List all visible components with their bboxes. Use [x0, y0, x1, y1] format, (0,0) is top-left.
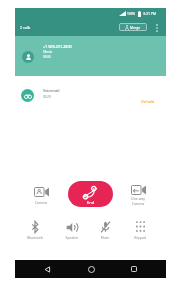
staticText: Merge [130, 25, 141, 29]
button[interactable]: Bluetooth [18, 221, 52, 245]
button[interactable]: Home [79, 260, 103, 278]
staticText: Bluetooth [18, 235, 52, 240]
button[interactable]: Camera [24, 187, 58, 210]
staticText: 3:21 PM [143, 11, 157, 16]
staticText: Voicemail [43, 88, 60, 93]
button[interactable]: More options [150, 19, 164, 36]
staticText: 100% [127, 12, 136, 16]
button[interactable]: Speaker [55, 222, 89, 245]
staticText: Keypad [123, 235, 157, 240]
staticText: Speaker [55, 235, 89, 240]
button[interactable]: +1 509-231-2830 [15, 36, 166, 76]
staticText: +1 509-231-2830 [43, 44, 72, 49]
button[interactable]: Recents [122, 260, 146, 278]
staticText: One-way Camera [121, 196, 155, 206]
button[interactable]: Merge [119, 23, 147, 31]
button[interactable]: Mute [88, 221, 122, 245]
staticText: Mute [88, 235, 122, 240]
staticText: Illinois [43, 50, 53, 54]
staticText: 00:29 [43, 95, 51, 99]
button[interactable]: Back [35, 260, 59, 278]
staticText: 00:36 [43, 55, 51, 59]
staticText: Camera [24, 200, 58, 205]
button[interactable]: Voicemail [15, 76, 166, 110]
staticText: 2 calls [20, 25, 31, 30]
staticText: On hold [141, 99, 154, 104]
button[interactable]: One-way Camera [121, 185, 155, 206]
staticText: End [87, 200, 95, 205]
button[interactable]: Keypad [123, 221, 157, 245]
button[interactable]: End [68, 181, 113, 207]
